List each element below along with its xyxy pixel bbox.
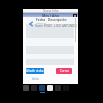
button[interactable]: App — [47, 85, 53, 91]
button[interactable]: App — [23, 85, 29, 91]
button[interactable]: Close — [73, 14, 77, 18]
staticText: 04/01/18 — [36, 21, 46, 24]
button[interactable]: App — [55, 85, 61, 91]
button[interactable]: Añadir visita — [26, 68, 44, 74]
button[interactable]: Back — [28, 21, 34, 27]
staticText: Gasto 90580 - LIDO ANTONIO J — [35, 24, 77, 28]
button[interactable]: Cerrar — [56, 68, 72, 74]
staticText: Nueva ficha — [43, 9, 59, 13]
button[interactable]: Atrás — [32, 77, 39, 81]
staticText: Cerrar — [60, 69, 69, 73]
staticText: Añadir visita — [26, 69, 44, 73]
button[interactable]: App — [39, 85, 45, 91]
staticText: Mes / Año — [42, 13, 59, 17]
staticText: Fecha — [36, 18, 46, 22]
staticText: Descripción — [48, 18, 67, 22]
